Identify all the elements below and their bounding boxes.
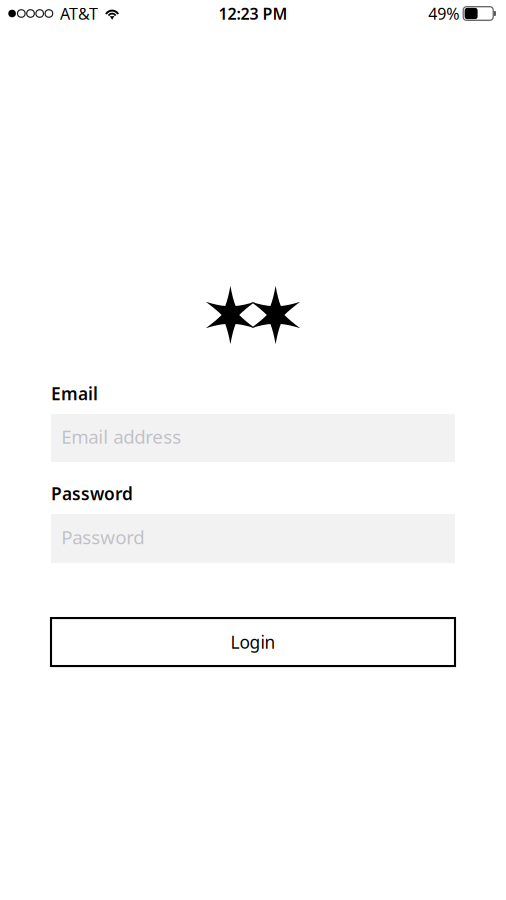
staticText: Login bbox=[230, 630, 275, 653]
staticText: AT&T bbox=[60, 3, 98, 24]
button[interactable]: Login bbox=[51, 618, 455, 666]
staticText: Email bbox=[51, 382, 98, 405]
staticText: Email address bbox=[61, 424, 181, 449]
staticText: Password bbox=[61, 525, 144, 549]
button[interactable]: Password bbox=[51, 514, 455, 563]
button[interactable]: Email address bbox=[51, 414, 455, 462]
staticText: 12:23 PM bbox=[218, 3, 287, 24]
staticText: 49% bbox=[428, 3, 459, 24]
staticText: Password bbox=[51, 482, 133, 505]
